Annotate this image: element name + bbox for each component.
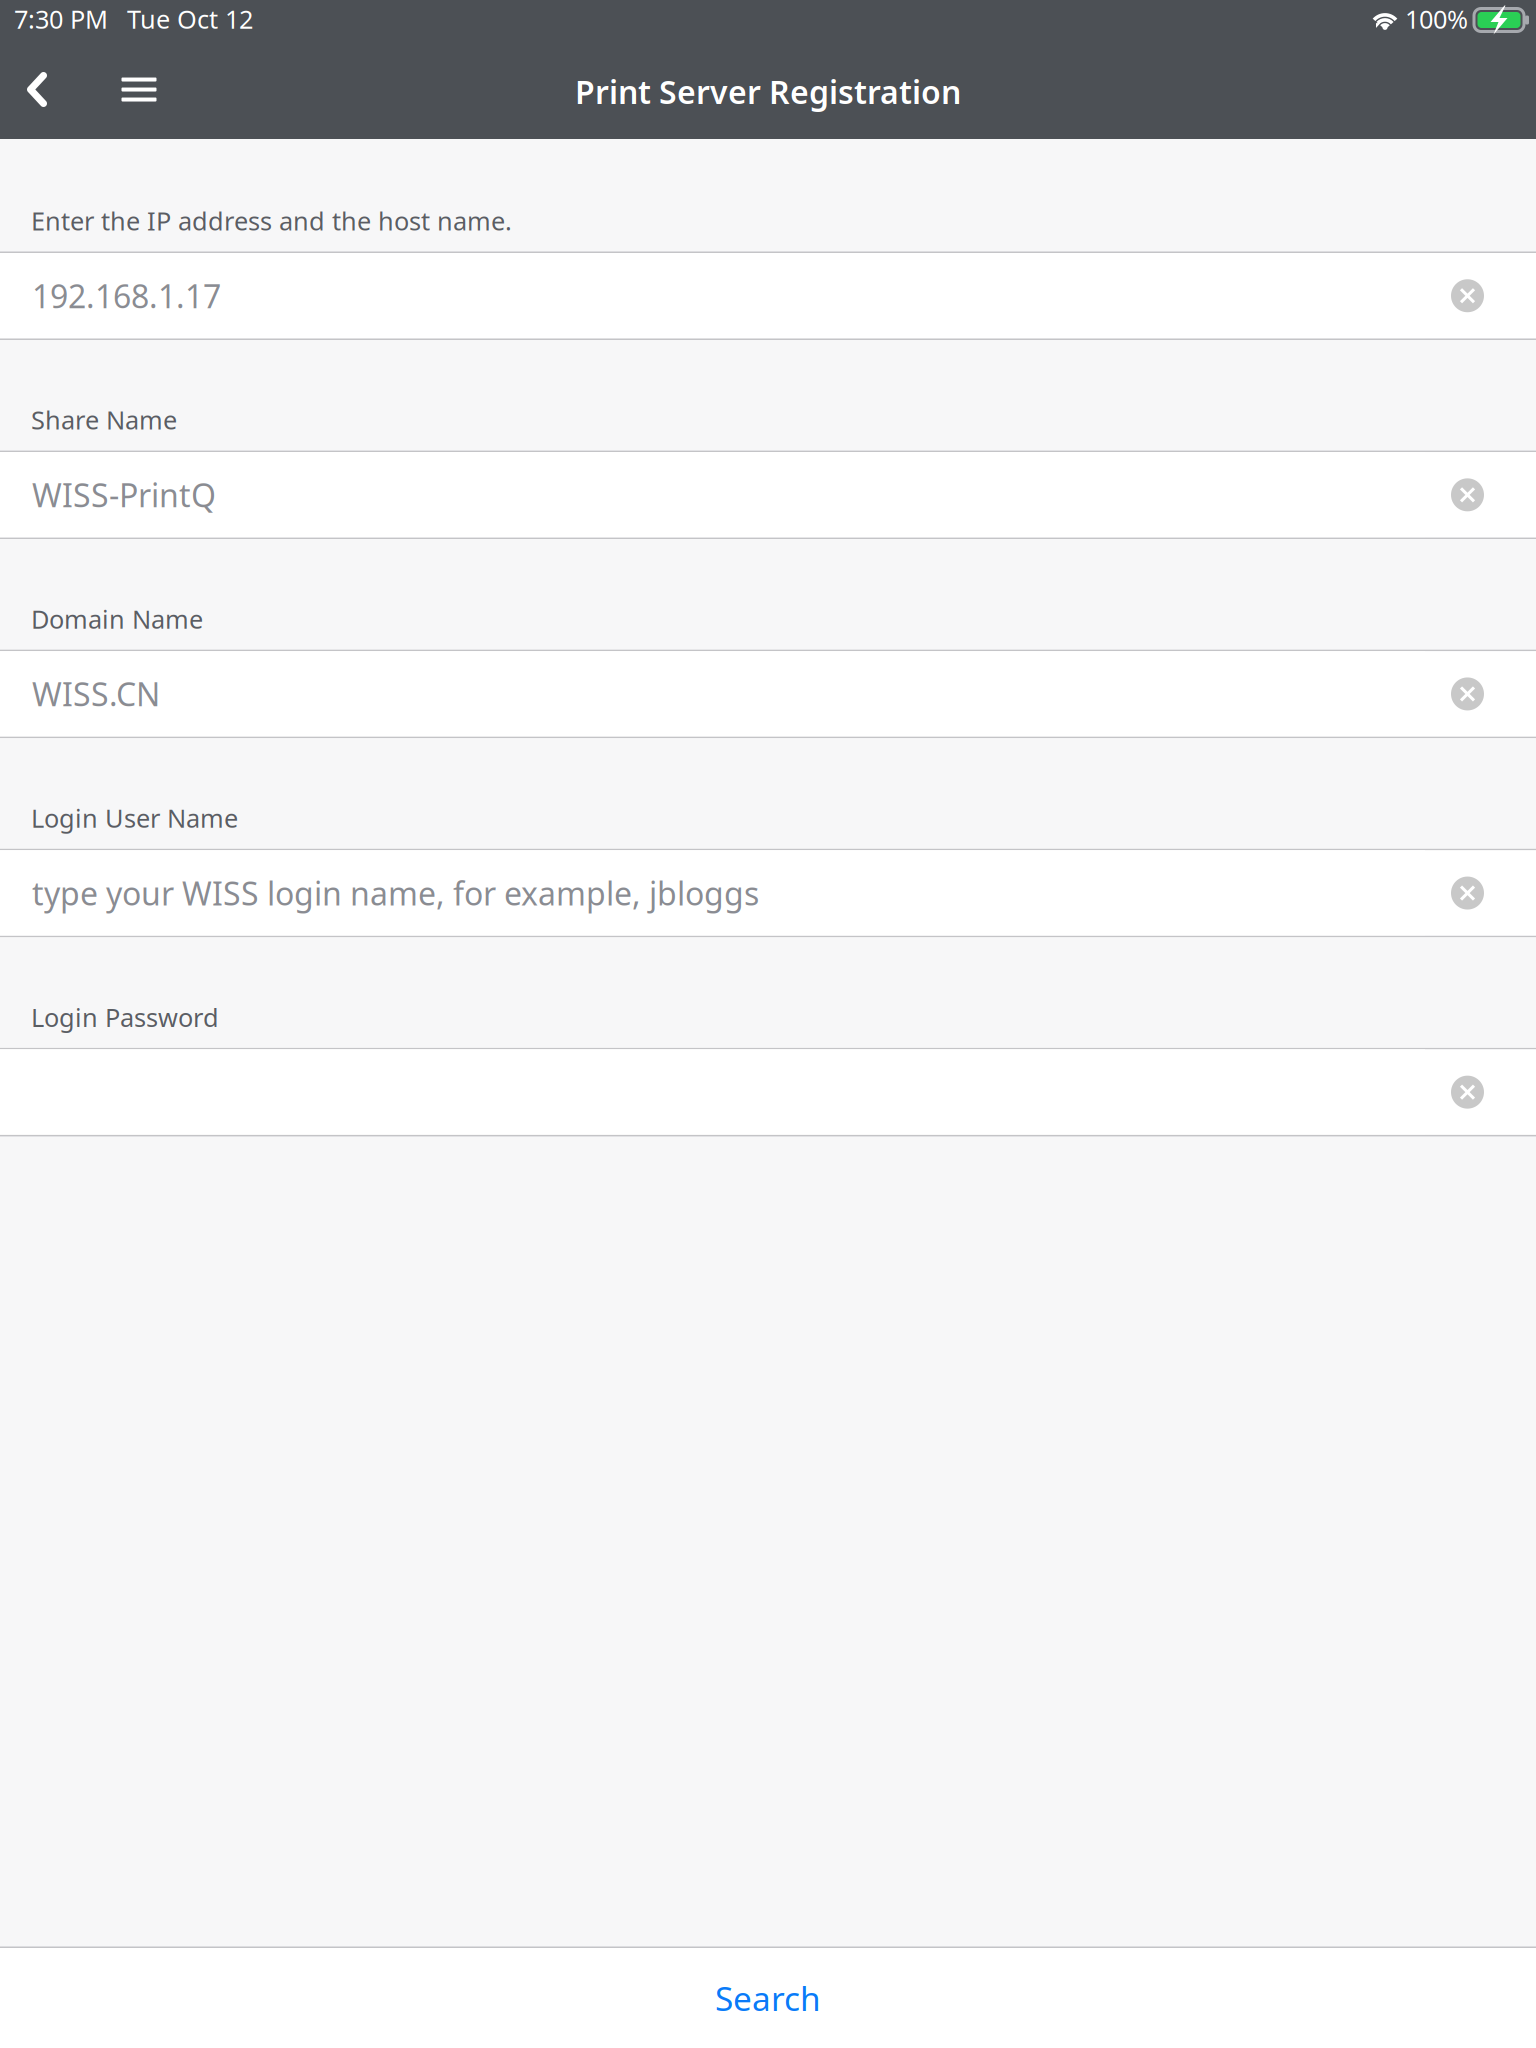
staticText: Login User Name bbox=[31, 801, 238, 835]
staticText: Domain Name bbox=[31, 602, 203, 636]
staticText: 7:30 PM bbox=[14, 2, 108, 36]
button[interactable]: Menu bbox=[106, 44, 172, 139]
staticText: WISS-PrintQ bbox=[32, 474, 216, 516]
button[interactable]: Domain Name bbox=[0, 651, 1425, 737]
button[interactable]: IP address or host name bbox=[0, 253, 1425, 338]
button[interactable]: Search bbox=[0, 1948, 1536, 2048]
staticText: Enter the IP address and the host name. bbox=[31, 204, 512, 237]
staticText: Login Password bbox=[31, 1000, 219, 1034]
staticText: 192.168.1.17 bbox=[32, 274, 221, 317]
button[interactable]: Share Name bbox=[0, 452, 1425, 538]
button[interactable]: Clear text bbox=[1425, 850, 1536, 936]
button[interactable]: Clear text bbox=[1425, 253, 1536, 338]
button[interactable]: Clear text bbox=[1425, 651, 1536, 737]
button[interactable]: Clear text bbox=[1425, 1049, 1536, 1135]
staticText: Share Name bbox=[31, 403, 177, 437]
staticText: Tue Oct 12 bbox=[127, 2, 253, 36]
staticText: type your WISS login name, for example, … bbox=[32, 872, 759, 914]
staticText: WISS.CN bbox=[32, 673, 160, 715]
button[interactable]: Clear text bbox=[1425, 452, 1536, 538]
staticText: 100% bbox=[1405, 2, 1468, 36]
staticText: Search bbox=[715, 1976, 821, 2020]
button[interactable]: Back bbox=[0, 44, 74, 139]
button[interactable]: Login User Name bbox=[0, 850, 1425, 936]
staticText: Print Server Registration bbox=[575, 70, 961, 113]
